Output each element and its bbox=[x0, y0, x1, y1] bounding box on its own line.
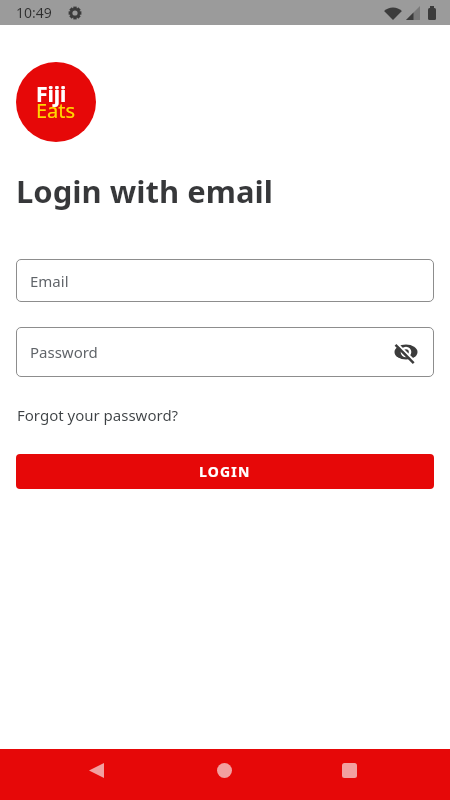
button[interactable] bbox=[342, 763, 357, 778]
button[interactable]: Forgot your password? bbox=[16, 405, 179, 425]
button[interactable] bbox=[89, 763, 104, 778]
staticText: 10:49 bbox=[16, 3, 52, 22]
button[interactable]: Password bbox=[16, 327, 434, 377]
staticText: LOGIN bbox=[199, 462, 251, 481]
staticText: Eats bbox=[36, 97, 76, 124]
button[interactable] bbox=[217, 763, 232, 778]
staticText: Email bbox=[30, 271, 69, 291]
button[interactable] bbox=[394, 340, 418, 364]
button[interactable]: Email bbox=[16, 259, 434, 302]
staticText: Password bbox=[30, 342, 98, 362]
staticText: Fiji bbox=[36, 80, 67, 109]
staticText: Login with email bbox=[16, 170, 274, 212]
button[interactable]: LOGIN bbox=[16, 454, 434, 489]
